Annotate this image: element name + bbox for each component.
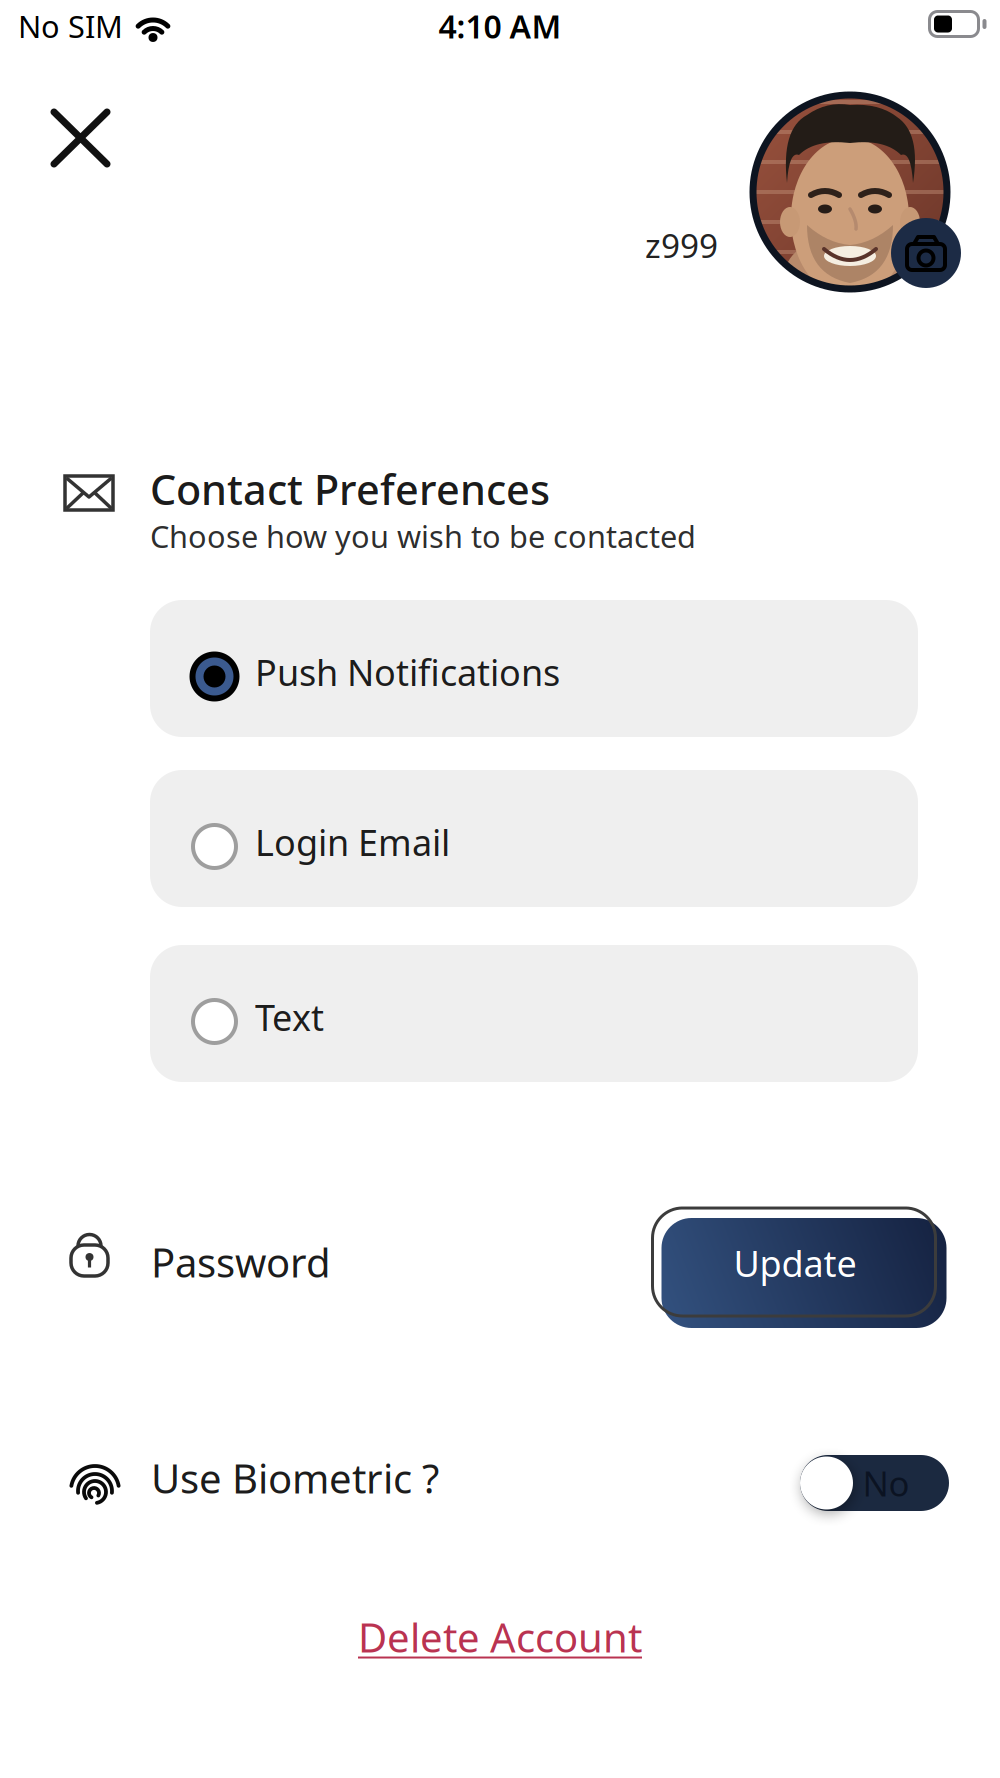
staticText: Update <box>733 1239 856 1287</box>
staticText: No SIM <box>18 6 123 46</box>
staticText: Login Email <box>255 818 450 866</box>
button[interactable]: Change photo <box>891 218 961 288</box>
staticText: Push Notifications <box>255 648 560 696</box>
button[interactable]: Update <box>645 1200 942 1324</box>
staticText: z999 <box>645 223 718 267</box>
button[interactable]: Text <box>150 945 918 1082</box>
button[interactable]: Login Email <box>150 770 918 907</box>
button[interactable]: Delete Account <box>358 1610 642 1663</box>
staticText: Delete Account <box>358 1610 642 1663</box>
staticText: No <box>862 1460 909 1506</box>
staticText: Password <box>151 1235 331 1288</box>
staticText: Choose how you wish to be contacted <box>150 516 696 556</box>
staticText: 4:10 AM <box>438 5 561 47</box>
button[interactable]: Push Notifications <box>150 600 918 737</box>
staticText: Contact Preferences <box>150 462 550 516</box>
staticText: Use Biometric ? <box>151 1451 439 1504</box>
button[interactable]: Close <box>36 94 125 182</box>
button[interactable]: Use Biometric toggle <box>800 1455 949 1511</box>
staticText: Text <box>255 993 324 1041</box>
